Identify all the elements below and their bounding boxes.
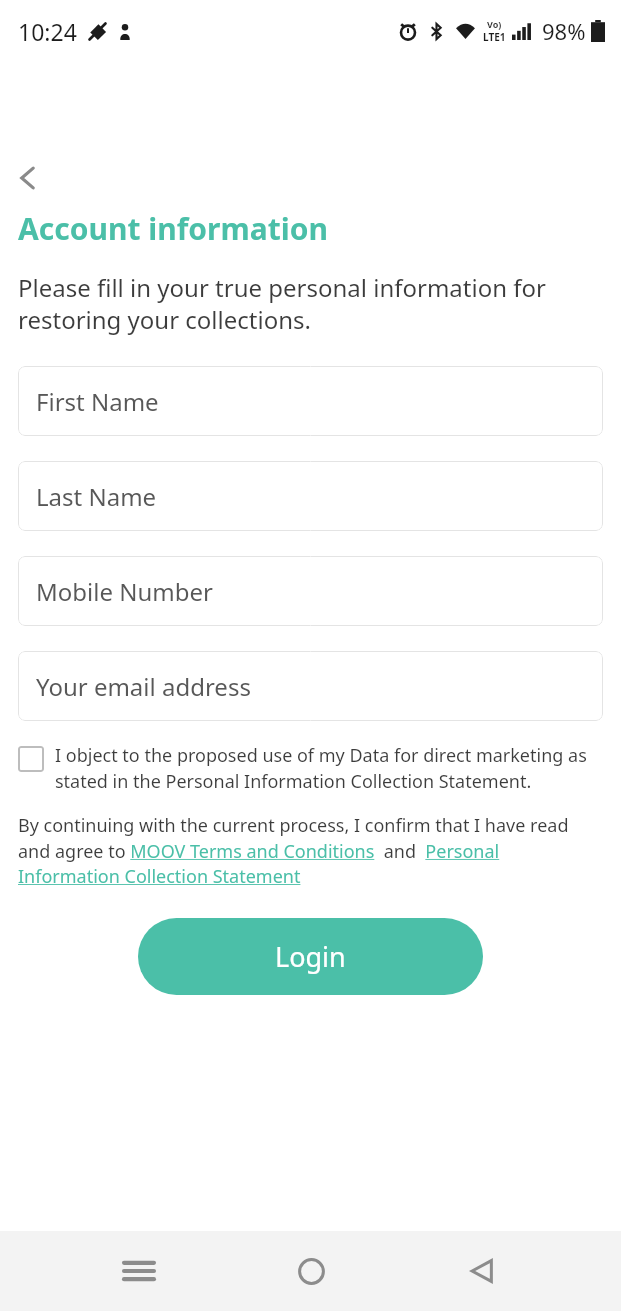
staticText: Please fill in your true personal inform… bbox=[18, 271, 603, 336]
button[interactable]: Login bbox=[138, 918, 483, 995]
staticText: 10:24 bbox=[18, 16, 77, 47]
staticText: Account information bbox=[18, 208, 328, 249]
staticText: Login bbox=[275, 938, 346, 975]
staticText: LTE1 bbox=[483, 30, 506, 44]
button[interactable]: Last Name bbox=[18, 461, 603, 531]
staticText: Vo) bbox=[487, 18, 502, 30]
button[interactable]: Home bbox=[279, 1239, 343, 1303]
button[interactable]: Your email address bbox=[18, 651, 603, 721]
button[interactable]: I object to the proposed use of my Data … bbox=[18, 743, 603, 793]
button[interactable]: First Name bbox=[18, 366, 603, 436]
staticText: Your email address bbox=[36, 670, 251, 703]
staticText: I object to the proposed use of my Data … bbox=[55, 743, 603, 793]
button[interactable]: Recent apps bbox=[107, 1239, 171, 1303]
button[interactable]: Mobile Number bbox=[18, 556, 603, 626]
button[interactable]: Back bbox=[450, 1239, 514, 1303]
staticText: 98% bbox=[542, 16, 586, 46]
staticText: Last Name bbox=[36, 480, 157, 513]
staticText: Mobile Number bbox=[36, 575, 213, 608]
button[interactable]: Back bbox=[4, 154, 52, 202]
staticText: First Name bbox=[36, 385, 159, 418]
button[interactable]: By continuing with the current process, … bbox=[18, 813, 603, 888]
